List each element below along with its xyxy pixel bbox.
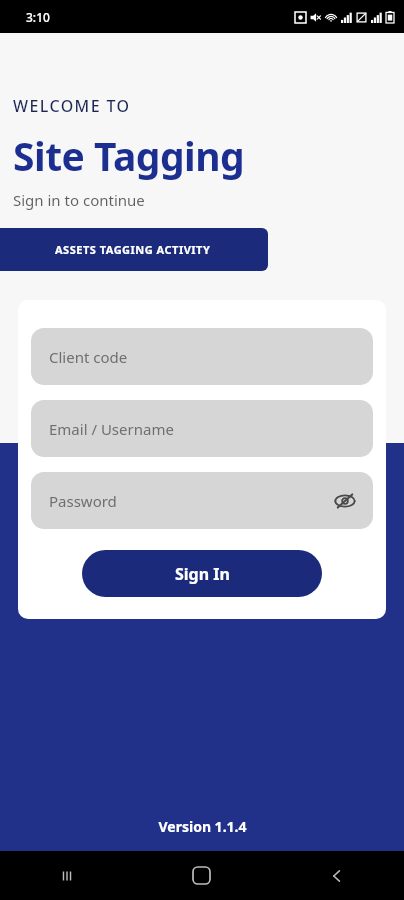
- staticText: Site Tagging: [13, 129, 245, 182]
- staticText: Email / Username: [49, 419, 174, 439]
- button[interactable]: Back: [269, 851, 404, 900]
- button[interactable]: ASSETS TAGGING ACTIVITY: [0, 228, 268, 271]
- staticText: WELCOME TO: [13, 95, 131, 117]
- button[interactable]: Show password: [327, 483, 363, 519]
- button[interactable]: Email / Username: [31, 400, 373, 457]
- staticText: Client code: [49, 347, 128, 367]
- button[interactable]: Home: [134, 851, 269, 900]
- button[interactable]: Client code: [31, 328, 373, 385]
- staticText: 3:10: [26, 9, 50, 25]
- staticText: Password: [49, 491, 117, 511]
- button[interactable]: Password: [31, 472, 373, 529]
- staticText: ASSETS TAGGING ACTIVITY: [55, 242, 211, 257]
- staticText: Sign in to continue: [13, 190, 145, 210]
- staticText: Version 1.1.4: [158, 817, 247, 836]
- button[interactable]: Sign In: [82, 550, 322, 597]
- button[interactable]: Recents: [0, 851, 134, 900]
- staticText: Sign In: [175, 563, 230, 585]
